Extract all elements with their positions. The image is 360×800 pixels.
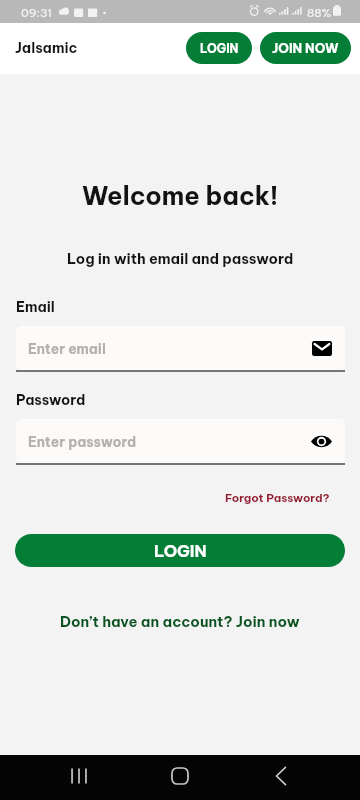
other: Show password [311,435,332,448]
staticText: Don’t have an account? Join now [60,612,300,630]
button[interactable]: LOGIN [186,32,252,64]
button[interactable]: LOGIN [15,534,345,567]
staticText: Log in with email and password [67,250,294,268]
staticText: Jalsamic [15,39,78,57]
staticText: Enter email [28,340,106,357]
staticText: Email [16,298,55,316]
staticText: 88% [307,5,332,20]
staticText: Enter password [28,433,137,450]
staticText: 09:31 [21,5,52,20]
button[interactable]: Enter password [16,419,345,463]
button[interactable]: Recent apps [65,762,93,790]
staticText: JOIN NOW [272,40,339,56]
button[interactable]: Enter email [16,326,345,370]
button[interactable]: Back [267,762,295,790]
button[interactable]: Don’t have an account? Join now [56,608,304,634]
button[interactable]: Home [166,762,194,790]
staticText: Forgot Password? [225,491,330,505]
staticText: LOGIN [200,41,239,56]
staticText: Welcome back! [82,180,279,212]
staticText: LOGIN [154,541,207,561]
button[interactable]: Forgot Password? [225,489,360,507]
staticText: Password [16,391,86,409]
button[interactable]: JOIN NOW [260,32,351,64]
other: Email [312,341,332,356]
